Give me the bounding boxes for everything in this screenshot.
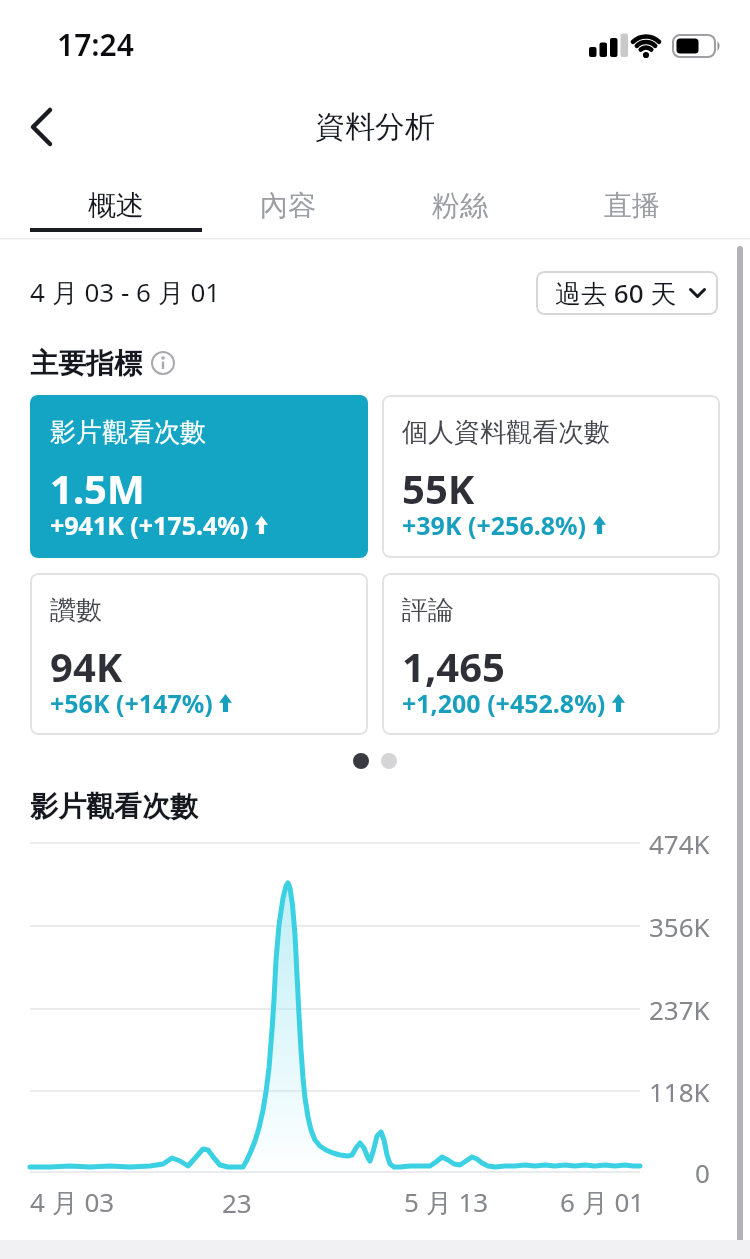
staticText: 個人資料觀看次數 [402, 416, 610, 449]
staticText: +56K (+147%) [50, 686, 213, 720]
staticText: 1.5M [50, 461, 145, 515]
staticText: 過去 60 天 [555, 275, 677, 311]
button[interactable] [20, 100, 70, 154]
staticText: 356K [649, 909, 710, 944]
staticText: 主要指標 [30, 346, 142, 380]
staticText: 4 月 03 - 6 月 01 [30, 274, 221, 310]
button[interactable]: 粉絲 [374, 178, 546, 232]
staticText: 118K [649, 1074, 710, 1109]
staticText: 概述 [88, 188, 144, 223]
staticText: 資料分析 [315, 108, 435, 146]
button[interactable]: 內容 [202, 178, 374, 232]
staticText: 5 月 13 [404, 1184, 489, 1220]
staticText: 讚數 [50, 594, 102, 627]
staticText: 直播 [604, 188, 660, 223]
button[interactable]: 過去 60 天 [536, 271, 718, 315]
staticText: 粉絲 [432, 188, 488, 223]
staticText: 0 [695, 1155, 710, 1190]
button[interactable]: 直播 [546, 178, 718, 232]
staticText: 55K [402, 461, 475, 515]
staticText: 17:24 [57, 24, 134, 60]
staticText: +941K (+175.4%) [50, 508, 249, 542]
staticText: 1,465 [402, 639, 505, 693]
staticText: 474K [649, 826, 710, 861]
staticText: 影片觀看次數 [50, 416, 206, 449]
staticText: 94K [50, 639, 123, 693]
staticText: +1,200 (+452.8%) [402, 686, 606, 720]
button[interactable]: 讚數 [30, 573, 368, 735]
staticText: 內容 [260, 188, 316, 223]
button[interactable]: 影片觀看次數 [30, 395, 368, 558]
staticText: 23 [222, 1185, 252, 1220]
staticText: 6 月 01 [560, 1184, 645, 1220]
button[interactable]: 個人資料觀看次數 [382, 395, 720, 558]
button[interactable]: 評論 [382, 573, 720, 735]
button[interactable]: 概述 [30, 178, 202, 232]
staticText: +39K (+256.8%) [402, 508, 587, 542]
staticText: 影片觀看次數 [30, 789, 198, 824]
staticText: 237K [649, 992, 710, 1027]
staticText: 評論 [402, 594, 454, 627]
staticText: 4 月 03 [30, 1184, 115, 1220]
